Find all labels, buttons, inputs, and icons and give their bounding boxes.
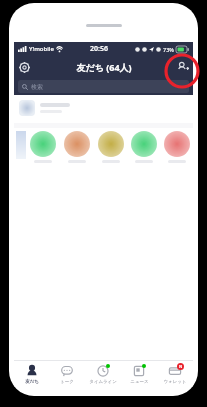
staticText: トーク <box>60 379 74 385</box>
staticText: 検索 <box>31 83 43 91</box>
button[interactable]: 検索 <box>22 80 185 93</box>
button[interactable]: ニュース <box>121 361 157 387</box>
button[interactable]: Settings <box>14 57 34 77</box>
button[interactable]: 友だち <box>14 361 49 387</box>
staticText: 73% <box>163 46 174 53</box>
button[interactable]: Add friend <box>173 57 193 77</box>
staticText: タイムライン <box>89 379 117 385</box>
button[interactable]: タイムライン <box>85 361 121 387</box>
staticText: N <box>179 364 183 369</box>
button[interactable] <box>26 131 60 163</box>
staticText: Y!mobile <box>29 45 54 53</box>
staticText: 友だち <box>25 379 39 385</box>
button[interactable]: トーク <box>49 361 85 387</box>
staticText: 友だち (64人) <box>76 61 132 73</box>
button[interactable] <box>127 131 160 163</box>
button[interactable]: N <box>157 361 193 387</box>
staticText: ウォレット <box>163 379 187 385</box>
staticText: ニュース <box>130 379 149 385</box>
button[interactable] <box>160 131 193 163</box>
button[interactable] <box>60 131 94 163</box>
button[interactable] <box>94 131 127 163</box>
staticText: 20:56 <box>90 44 108 54</box>
